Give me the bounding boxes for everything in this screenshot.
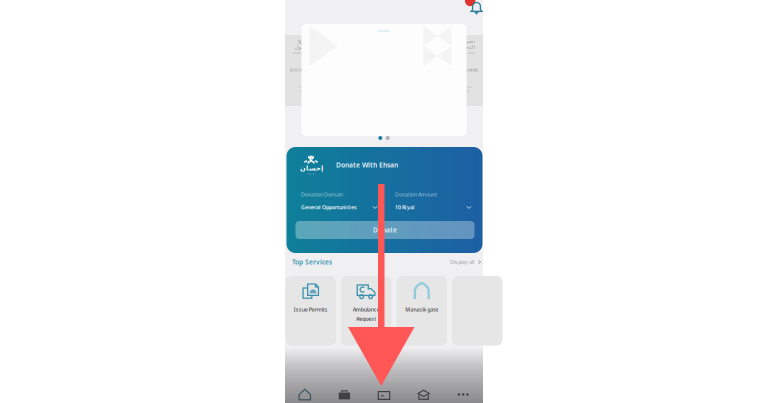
button[interactable]: Manasik gate (396, 276, 447, 345)
staticText: Request (356, 315, 376, 322)
staticText: Ambulance (353, 306, 380, 313)
staticText: Display all (450, 258, 474, 266)
staticText: 10 Riyal (395, 204, 415, 211)
button[interactable]: Notifications (465, 0, 483, 16)
staticText: تصريح الدخول (458, 38, 474, 50)
staticText: PERMIT ENTRY (458, 52, 476, 55)
button[interactable]: Requests (364, 388, 404, 401)
button[interactable]: Display all (450, 258, 482, 266)
staticText: PERMIT ENTRY (292, 52, 310, 55)
staticText: General Opportunities (301, 204, 357, 211)
staticText: Manasik gate (405, 306, 438, 313)
staticText: اسم مقدم (299, 89, 310, 92)
staticText: Donation Domain (301, 191, 343, 198)
button[interactable]: Home (285, 388, 325, 401)
staticText: اسم مقدم (458, 89, 469, 92)
button[interactable]: More (443, 388, 483, 401)
staticText: رقم الطلب (297, 85, 310, 88)
staticText: Top Services (292, 258, 332, 266)
button[interactable]: Donate (295, 221, 474, 239)
button[interactable]: Hajj (404, 388, 443, 401)
staticText: إحسان (299, 164, 322, 172)
staticText: BUCHANE (458, 67, 478, 73)
staticText: رقم الطلب (458, 85, 471, 88)
staticText: تصريح الدخول (294, 38, 310, 50)
staticText: منصة التبرعات الوطنية (306, 173, 315, 175)
staticText: Donate With Ehsan (336, 161, 398, 169)
staticText: Donate (373, 226, 397, 234)
button[interactable]: Services (325, 388, 364, 401)
button[interactable]: Issue Permits (285, 276, 336, 345)
staticText: Issue Permits (294, 306, 328, 313)
staticText: Donation Amount (395, 191, 437, 198)
staticText: BUCHANE (290, 67, 310, 73)
button[interactable]: Ambulance (341, 276, 391, 345)
